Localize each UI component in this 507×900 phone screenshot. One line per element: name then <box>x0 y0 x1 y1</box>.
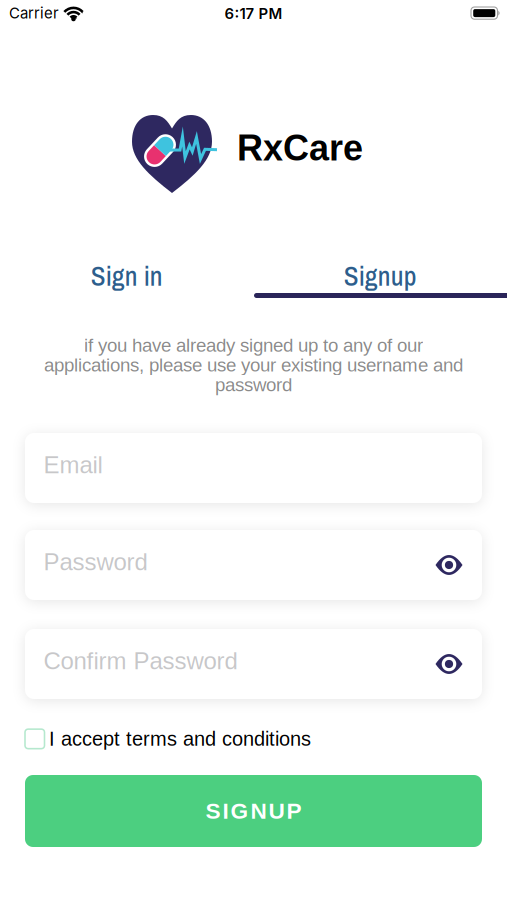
button[interactable]: Password <box>25 530 482 600</box>
button[interactable]: Confirm Password <box>25 629 482 699</box>
button[interactable]: I accept terms and conditions <box>25 728 311 750</box>
staticText: SIGNUP <box>205 799 301 823</box>
button[interactable]: Show password <box>435 653 462 674</box>
button[interactable]: Sign in <box>0 251 253 301</box>
staticText: RxCare <box>237 128 363 168</box>
button[interactable]: Show password <box>435 554 462 575</box>
staticText: password <box>215 375 292 395</box>
staticText: Sign in <box>91 258 163 294</box>
staticText: 6:17 PM <box>224 4 282 23</box>
staticText: if you have already signed up to any of … <box>84 335 423 355</box>
staticText: Password <box>43 549 147 575</box>
staticText: Signup <box>344 258 417 294</box>
staticText: applications, please use your existing u… <box>44 355 463 375</box>
staticText: I accept terms and conditions <box>49 728 311 750</box>
button[interactable]: Email <box>25 433 482 503</box>
staticText: Email <box>43 452 102 478</box>
staticText: Carrier <box>9 4 59 22</box>
staticText: Confirm Password <box>43 648 237 674</box>
button[interactable]: SIGNUP <box>25 775 482 847</box>
button[interactable]: Signup <box>253 251 507 301</box>
